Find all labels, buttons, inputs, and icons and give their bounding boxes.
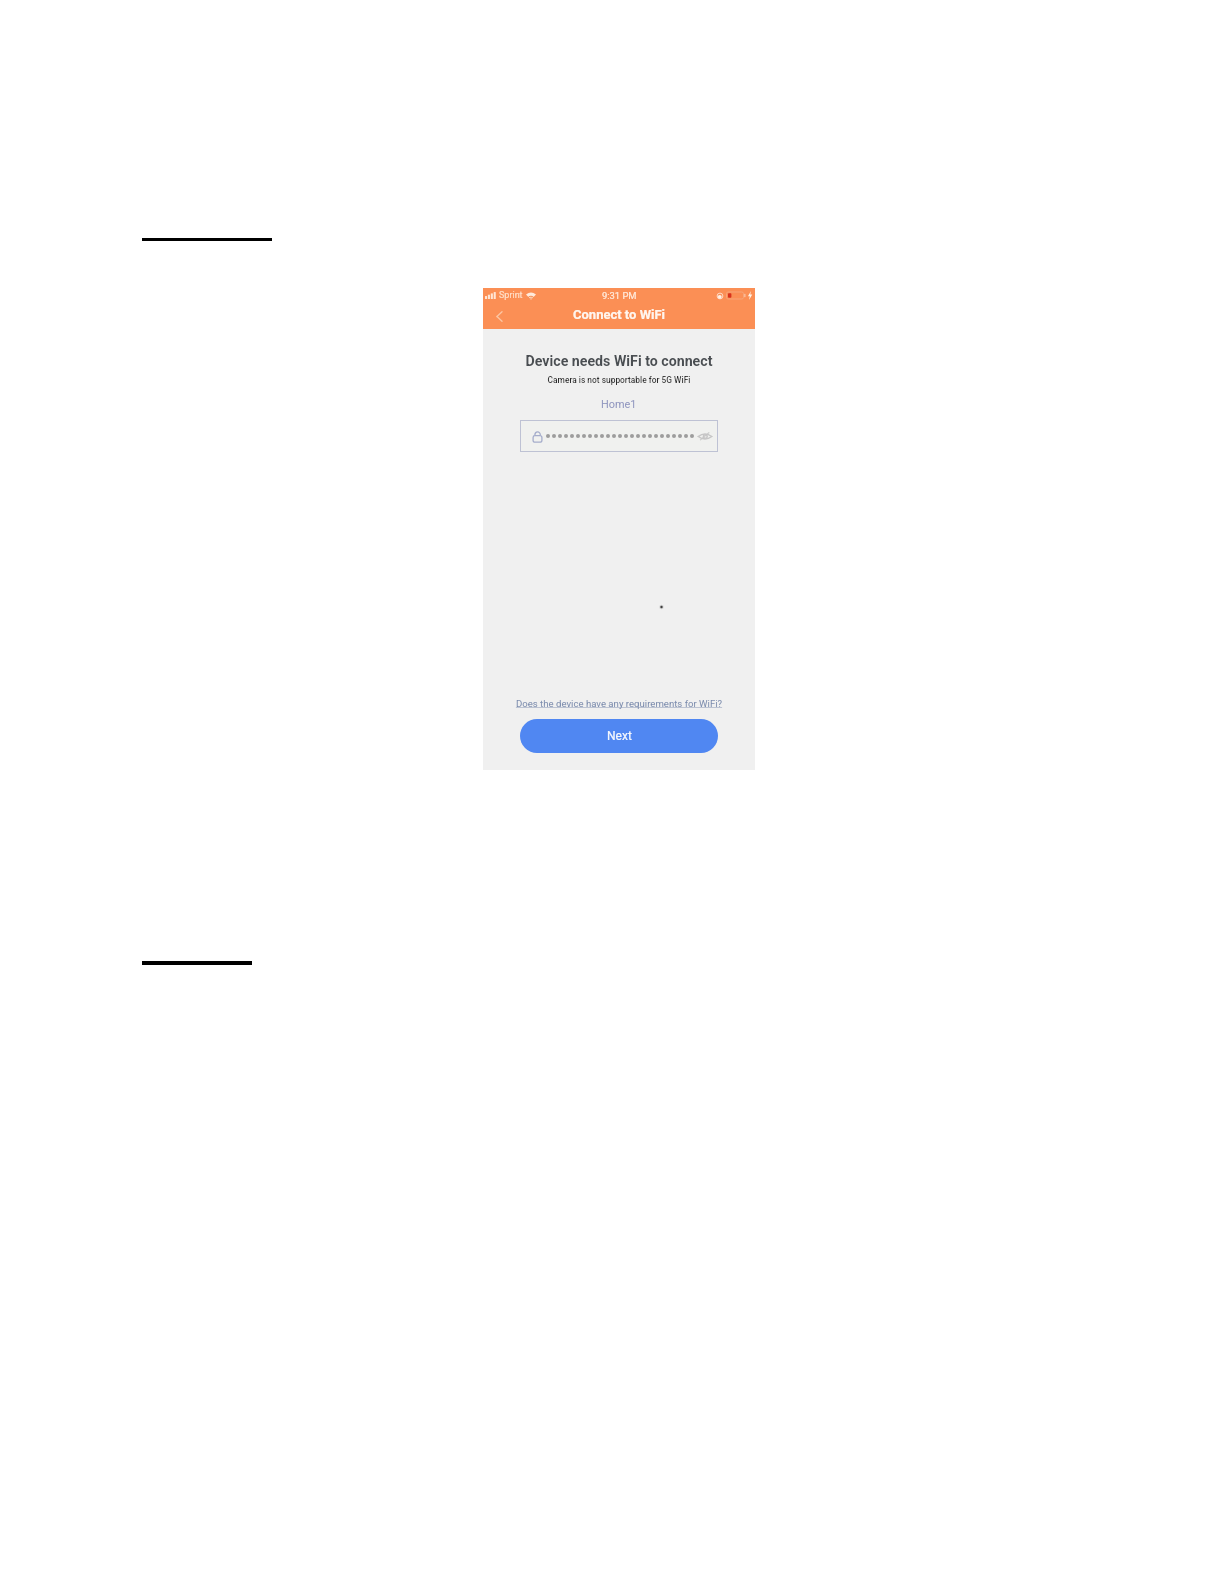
- staticText: Sprint: [499, 290, 523, 301]
- staticText: Home1: [601, 398, 637, 411]
- staticText: Device needs WiFi to connect: [483, 353, 755, 370]
- staticText: Next: [607, 729, 632, 743]
- button[interactable]: Home1: [597, 397, 641, 412]
- staticText: Connect to WiFi: [573, 307, 666, 322]
- button[interactable]: Does the device have any requirements fo…: [483, 698, 755, 709]
- staticText: 9:31 PM: [602, 290, 637, 301]
- button[interactable]: Show password: [696, 430, 713, 442]
- button[interactable]: Next: [520, 719, 718, 753]
- button[interactable]: Back: [490, 307, 509, 326]
- button[interactable]: Show password: [520, 420, 718, 452]
- staticText: Camera is not supportable for 5G WiFi: [483, 375, 755, 385]
